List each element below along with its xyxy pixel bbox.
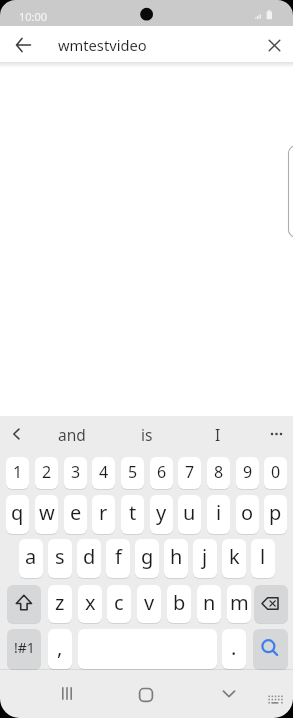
button[interactable]: t xyxy=(121,495,144,534)
staticText: x xyxy=(85,589,96,616)
button[interactable]: j xyxy=(193,539,217,578)
staticText: 9 xyxy=(243,461,253,483)
staticText: i xyxy=(216,499,222,526)
staticText: y xyxy=(156,499,167,526)
button[interactable] xyxy=(8,30,40,60)
button[interactable]: . xyxy=(222,629,246,669)
button[interactable] xyxy=(212,675,246,711)
button[interactable]: 6 xyxy=(150,457,173,489)
button[interactable] xyxy=(50,675,84,711)
button[interactable]: q xyxy=(6,495,29,534)
staticText: and xyxy=(58,424,86,445)
staticText: o xyxy=(241,499,254,526)
staticText: p xyxy=(269,499,282,526)
button[interactable] xyxy=(262,33,288,59)
staticText: z xyxy=(55,589,65,616)
button[interactable]: u xyxy=(178,495,201,534)
button[interactable]: , xyxy=(48,629,72,669)
button[interactable] xyxy=(129,675,163,711)
button[interactable]: x xyxy=(78,585,102,623)
button[interactable]: 9 xyxy=(236,457,259,489)
staticText: r xyxy=(99,499,108,526)
button[interactable]: 1 xyxy=(6,457,29,489)
staticText: h xyxy=(170,543,183,570)
staticText: j xyxy=(202,543,208,570)
button[interactable]: y xyxy=(150,495,173,534)
staticText: 7 xyxy=(185,461,195,483)
button[interactable]: b xyxy=(167,585,191,623)
staticText: . xyxy=(231,634,237,661)
button[interactable]: c xyxy=(107,585,131,623)
button[interactable] xyxy=(254,585,288,623)
button[interactable] xyxy=(4,420,30,448)
button[interactable]: !#1 xyxy=(7,629,41,669)
button[interactable] xyxy=(262,420,290,448)
staticText: c xyxy=(114,589,124,616)
button[interactable]: 5 xyxy=(121,457,144,489)
button[interactable]: 4 xyxy=(92,457,115,489)
button[interactable]: wmtestvideo xyxy=(58,28,248,62)
staticText: m xyxy=(230,589,249,616)
staticText: 8 xyxy=(214,461,224,483)
button[interactable]: z xyxy=(48,585,72,623)
button[interactable]: s xyxy=(48,539,72,578)
button[interactable]: a xyxy=(19,539,43,578)
staticText: !#1 xyxy=(14,638,35,657)
button[interactable]: 2 xyxy=(35,457,58,489)
staticText: d xyxy=(83,543,96,570)
button[interactable]: 3 xyxy=(64,457,87,489)
staticText: k xyxy=(229,543,240,570)
button[interactable] xyxy=(253,629,288,669)
staticText: I xyxy=(215,424,221,445)
button[interactable]: m xyxy=(227,585,251,623)
button[interactable]: e xyxy=(64,495,87,534)
staticText: is xyxy=(141,424,153,445)
button[interactable]: f xyxy=(106,539,130,578)
button[interactable]: I xyxy=(186,418,250,450)
staticText: b xyxy=(173,589,186,616)
staticText: s xyxy=(55,543,65,570)
button[interactable]: l xyxy=(251,539,275,578)
staticText: u xyxy=(183,499,196,526)
staticText: q xyxy=(11,499,24,526)
staticText: 5 xyxy=(128,461,138,483)
staticText: f xyxy=(115,543,122,570)
staticText: t xyxy=(129,499,137,526)
staticText: l xyxy=(260,543,266,570)
staticText: 0 xyxy=(271,461,281,483)
button[interactable]: h xyxy=(164,539,188,578)
button[interactable]: v xyxy=(137,585,161,623)
staticText: 1 xyxy=(13,461,23,483)
button[interactable]: n xyxy=(197,585,221,623)
button[interactable]: 8 xyxy=(207,457,230,489)
button[interactable]: o xyxy=(236,495,259,534)
staticText: e xyxy=(70,499,82,526)
button[interactable] xyxy=(7,585,41,623)
staticText: g xyxy=(141,543,154,570)
staticText: 3 xyxy=(71,461,81,483)
staticText: w xyxy=(39,499,55,526)
button[interactable]: and xyxy=(40,418,104,450)
button[interactable]: g xyxy=(135,539,159,578)
button[interactable]: r xyxy=(92,495,115,534)
staticText: 2 xyxy=(42,461,52,483)
button[interactable]: d xyxy=(77,539,101,578)
button[interactable]: p xyxy=(264,495,287,534)
staticText: 6 xyxy=(157,461,167,483)
button[interactable]: k xyxy=(222,539,246,578)
staticText: 4 xyxy=(99,461,109,483)
button[interactable] xyxy=(264,690,286,710)
staticText: wmtestvideo xyxy=(58,35,147,55)
staticText: 10:00 xyxy=(19,9,48,22)
button[interactable]: w xyxy=(35,495,58,534)
staticText: v xyxy=(144,589,155,616)
button[interactable]: 7 xyxy=(178,457,201,489)
button[interactable]: i xyxy=(207,495,230,534)
staticText: a xyxy=(25,543,37,570)
staticText: n xyxy=(203,589,216,616)
staticText: , xyxy=(57,634,63,661)
button[interactable]: is xyxy=(115,418,179,450)
button[interactable]: 0 xyxy=(264,457,287,489)
